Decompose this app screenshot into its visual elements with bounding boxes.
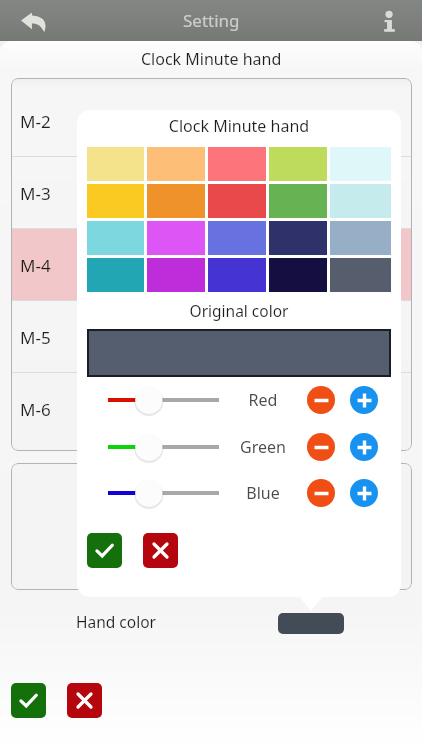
button[interactable]: Decrease Green: [307, 433, 335, 461]
button[interactable]: Cancel: [143, 533, 178, 568]
staticText: M-2: [20, 110, 51, 133]
staticText: M-3: [20, 182, 51, 205]
button[interactable]: Increase Blue: [350, 479, 378, 507]
staticText: M-6: [20, 398, 51, 421]
button[interactable]: Decrease Blue: [307, 479, 335, 507]
staticText: M-4: [20, 254, 51, 277]
staticText: M-5: [20, 326, 51, 349]
staticText: Original color: [77, 300, 401, 321]
button[interactable]: M-6: [11, 373, 412, 445]
button[interactable]: M-3: [11, 157, 412, 229]
button[interactable]: Cancel: [67, 683, 102, 718]
button[interactable]: Increase Red: [350, 386, 378, 414]
staticText: Clock Minute hand: [141, 48, 282, 70]
button[interactable]: Red level: [102, 385, 225, 415]
button[interactable]: Green level: [102, 432, 225, 462]
staticText: Blue: [223, 482, 303, 504]
button[interactable]: Blue level: [102, 478, 225, 508]
button[interactable]: Decrease Red: [307, 386, 335, 414]
button[interactable]: Hand color: [278, 613, 344, 634]
button[interactable]: Increase Green: [350, 433, 378, 461]
button[interactable]: Info: [367, 1, 411, 42]
staticText: Setting: [183, 9, 240, 32]
button[interactable]: M-4: [11, 229, 412, 301]
button[interactable]: Back: [11, 1, 57, 42]
button[interactable]: Confirm: [87, 533, 122, 568]
button[interactable]: M-5: [11, 301, 412, 373]
staticText: Clock Minute hand: [77, 115, 401, 137]
staticText: Green: [223, 436, 303, 458]
button[interactable]: M-2: [11, 85, 412, 157]
staticText: Hand color: [76, 611, 156, 632]
button[interactable]: Confirm: [11, 683, 46, 718]
staticText: Red: [223, 389, 303, 411]
